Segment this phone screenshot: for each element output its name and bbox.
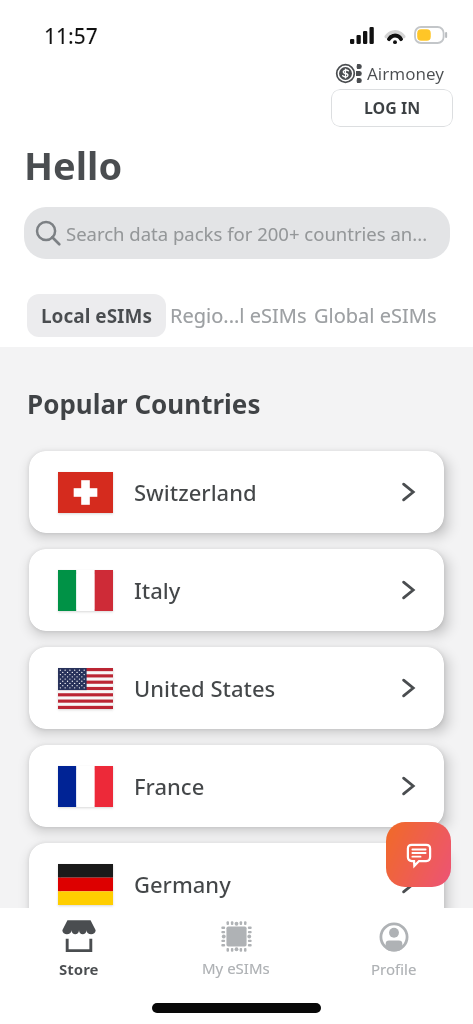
button[interactable]: LOG IN [331,89,453,127]
staticText: Switzerland [134,477,257,507]
staticText: United States [134,673,276,703]
button[interactable]: Local eSIMs [27,294,166,337]
button[interactable]: Search data packs for 200+ countries an.… [24,207,450,259]
button[interactable]: Italy [29,549,444,631]
button[interactable]: Chat support [386,822,451,887]
button[interactable]: United States [29,647,444,729]
staticText: Global eSIMs [314,302,437,329]
staticText: Hello [24,139,123,191]
button[interactable]: Store [9,914,149,985]
staticText: Airmoney [367,62,444,85]
staticText: Germany [134,869,231,899]
staticText: Italy [134,575,181,605]
button[interactable]: Germany [29,843,444,925]
button[interactable]: Regio...l eSIMs [165,294,312,337]
button[interactable]: Switzerland [29,451,444,533]
staticText: 11:57 [44,22,98,51]
button[interactable]: Profile [324,914,464,985]
staticText: My eSIMs [202,958,270,978]
staticText: Store [59,959,99,979]
staticText: Regio...l eSIMs [170,302,307,329]
staticText: Search data packs for 200+ countries an.… [66,221,428,246]
staticText: Popular Countries [27,386,261,421]
button[interactable]: My eSIMs [166,914,306,984]
button[interactable]: Global eSIMs [309,294,442,337]
button[interactable]: France [29,745,444,827]
staticText: Profile [371,959,417,979]
staticText: France [134,771,205,801]
staticText: Local eSIMs [41,303,152,329]
staticText: LOG IN [364,97,421,119]
